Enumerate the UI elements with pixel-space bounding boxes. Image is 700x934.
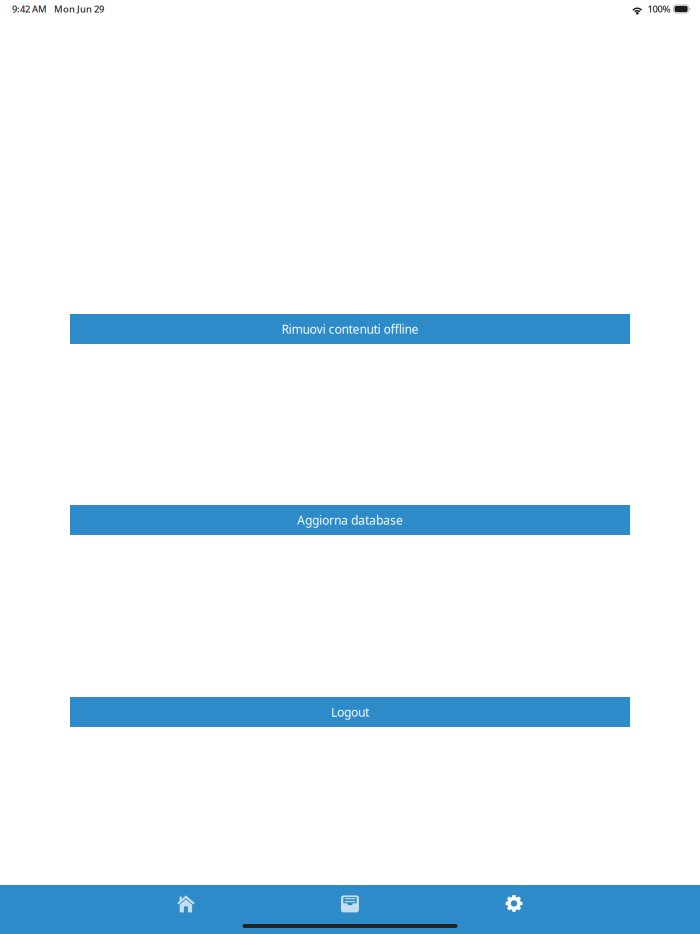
button[interactable]: Archive [268,885,432,934]
button[interactable]: Rimuovi contenuti offline [70,314,630,344]
staticText: Logout [331,704,369,720]
staticText: Aggiorna database [297,512,403,528]
button[interactable]: Home [104,885,268,934]
button[interactable]: Logout [70,697,630,727]
button[interactable]: Aggiorna database [70,505,630,535]
staticText: 9:42 AM [12,3,47,15]
staticText: 100% [648,3,671,15]
button[interactable]: Settings [432,885,596,934]
staticText: Rimuovi contenuti offline [281,321,418,337]
staticText: Mon Jun 29 [54,3,104,15]
